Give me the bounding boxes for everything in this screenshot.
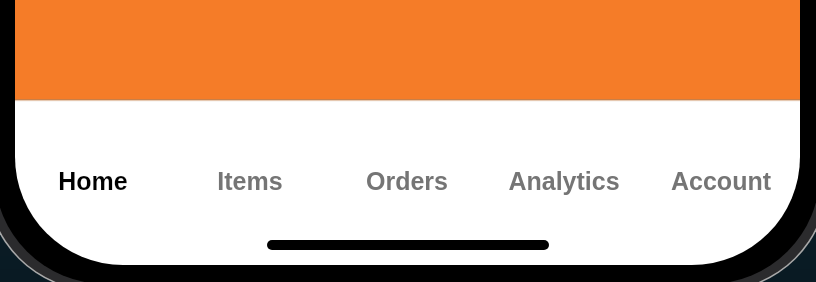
button[interactable]: Account: [642, 119, 799, 243]
staticText: Home: [58, 167, 128, 195]
button[interactable]: Analytics: [485, 119, 642, 243]
staticText: Account: [671, 167, 771, 195]
staticText: Items: [217, 167, 283, 195]
button[interactable]: Home: [15, 119, 171, 243]
staticText: Analytics: [508, 167, 620, 195]
button[interactable]: Items: [171, 119, 328, 243]
button[interactable]: Orders: [328, 119, 485, 243]
staticText: Orders: [366, 167, 448, 195]
